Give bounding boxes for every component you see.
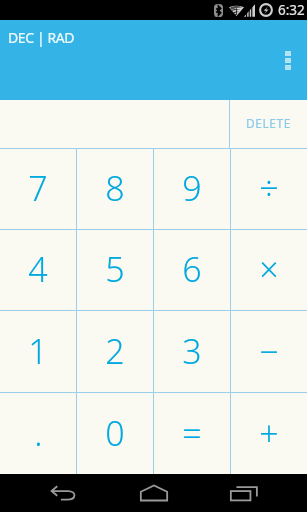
staticText: 2 [105, 328, 125, 374]
button[interactable]: 1 [0, 311, 76, 392]
button[interactable]: 4 [0, 230, 76, 310]
button[interactable]: . [0, 393, 76, 474]
button[interactable]: 6 [154, 230, 230, 310]
staticText: 6 [182, 246, 202, 292]
button[interactable]: Back [42, 474, 86, 512]
staticText: 4 [28, 246, 48, 292]
staticText: − [259, 328, 279, 374]
button[interactable]: 3 [154, 311, 230, 392]
staticText: × [259, 246, 279, 292]
button[interactable]: DELETE [230, 100, 307, 148]
button[interactable]: 5 [77, 230, 153, 310]
button[interactable]: 9 [154, 149, 230, 229]
button[interactable]: 2 [77, 311, 153, 392]
button[interactable]: − [231, 311, 307, 392]
staticText: 9 [182, 165, 202, 211]
button[interactable]: 8 [77, 149, 153, 229]
staticText: 7 [28, 165, 48, 211]
button[interactable]: DEC | RAD [6, 27, 77, 48]
staticText: 0 [105, 410, 125, 456]
staticText: + [259, 410, 279, 456]
button[interactable]: More options [268, 38, 307, 82]
button[interactable]: Recent apps [222, 474, 266, 512]
staticText: 6:32 [278, 1, 305, 19]
button[interactable]: = [154, 393, 230, 474]
staticText: 1 [28, 328, 48, 374]
staticText: . [34, 410, 43, 456]
button[interactable]: 7 [0, 149, 76, 229]
staticText: DELETE [246, 115, 292, 131]
button[interactable]: ÷ [231, 149, 307, 229]
button[interactable]: Home [132, 474, 176, 512]
staticText: DEC | RAD [8, 28, 75, 47]
staticText: 8 [105, 165, 125, 211]
staticText: ÷ [259, 165, 279, 211]
staticText: = [182, 410, 202, 456]
button[interactable]: 0 [77, 393, 153, 474]
staticText: 3 [182, 328, 202, 374]
button[interactable]: + [231, 393, 307, 474]
staticText: 5 [105, 246, 125, 292]
button[interactable]: × [231, 230, 307, 310]
